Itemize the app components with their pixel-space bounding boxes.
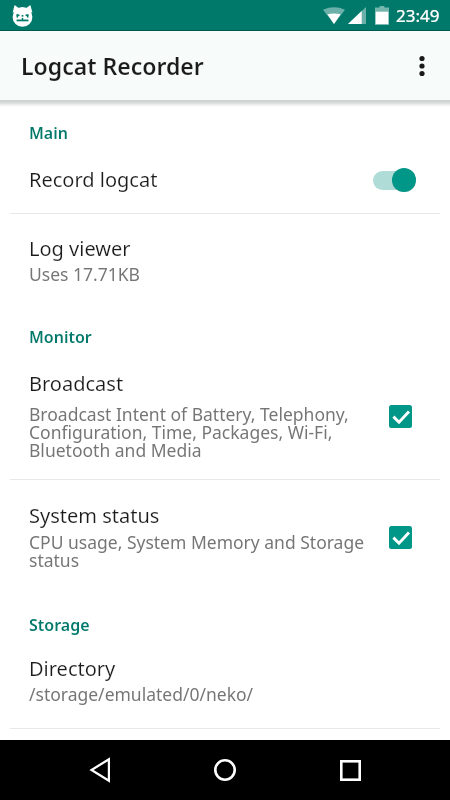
- staticText: /storage/emulated/0/neko/: [29, 682, 254, 706]
- staticText: Broadcast: [29, 370, 124, 397]
- button[interactable]: Home: [187, 740, 263, 800]
- staticText: Logcat Recorder: [21, 50, 204, 81]
- staticText: Monitor: [29, 326, 92, 348]
- staticText: Record logcat: [29, 166, 373, 193]
- staticText: 23:49: [396, 4, 440, 27]
- staticText: Storage: [29, 614, 90, 636]
- staticText: CPU usage, System Memory and Storage sta…: [29, 530, 367, 572]
- staticText: Log viewer: [29, 235, 131, 262]
- button[interactable]: Back: [62, 740, 138, 800]
- button[interactable]: Record logcat: [0, 154, 450, 213]
- button[interactable]: Directory: [0, 643, 450, 728]
- staticText: Main: [29, 122, 68, 144]
- button[interactable]: Recents: [312, 740, 388, 800]
- button[interactable]: More options: [400, 44, 444, 88]
- staticText: Uses 17.71KB: [29, 262, 140, 286]
- button[interactable]: Log viewer: [0, 214, 450, 294]
- staticText: Directory: [29, 655, 116, 682]
- button[interactable]: Broadcast: [0, 358, 450, 479]
- button[interactable]: System status: [0, 480, 450, 592]
- staticText: System status: [29, 502, 160, 529]
- staticText: Broadcast Intent of Battery, Telephony, …: [29, 402, 367, 462]
